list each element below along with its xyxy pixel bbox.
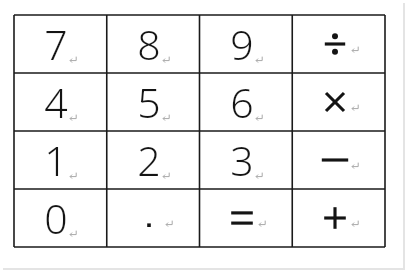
button[interactable]: 7: [14, 15, 107, 73]
button[interactable]: Add: [293, 189, 385, 247]
staticText: 0: [44, 190, 68, 246]
button[interactable]: 4: [14, 73, 107, 131]
staticText: 1: [44, 132, 68, 188]
button[interactable]: 9: [200, 15, 293, 73]
staticText: 6: [230, 74, 254, 130]
other: Equals: [227, 203, 257, 233]
button[interactable]: Equals: [200, 189, 293, 247]
button[interactable]: 1: [14, 131, 107, 189]
staticText: 7: [44, 16, 68, 72]
staticText: 9: [230, 16, 254, 72]
staticText: 2: [137, 132, 161, 188]
staticText: 3: [230, 132, 254, 188]
other: Subtract: [320, 145, 350, 175]
button[interactable]: Multiply: [293, 73, 385, 131]
button[interactable]: 8: [107, 15, 200, 73]
other: Decimal point: [134, 203, 164, 233]
button[interactable]: 3: [200, 131, 293, 189]
other: Multiply: [320, 87, 350, 117]
button[interactable]: 6: [200, 73, 293, 131]
other: Add: [320, 203, 350, 233]
button[interactable]: Subtract: [293, 131, 385, 189]
button[interactable]: Divide: [293, 15, 385, 73]
button[interactable]: 2: [107, 131, 200, 189]
button[interactable]: 5: [107, 73, 200, 131]
button[interactable]: Decimal point: [107, 189, 200, 247]
staticText: 8: [137, 16, 161, 72]
other: Divide: [320, 29, 350, 59]
staticText: 5: [137, 74, 161, 130]
staticText: 4: [44, 74, 68, 130]
button[interactable]: 0: [14, 189, 107, 247]
